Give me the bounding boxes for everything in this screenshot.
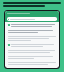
button[interactable] <box>6 49 58 54</box>
button[interactable] <box>6 35 58 42</box>
button[interactable] <box>6 55 58 60</box>
button[interactable] <box>6 61 58 67</box>
button[interactable] <box>6 29 58 34</box>
button[interactable] <box>6 43 58 48</box>
button[interactable]: Search <box>7 17 57 21</box>
button[interactable]: App bar <box>5 11 59 16</box>
button[interactable] <box>6 23 58 28</box>
